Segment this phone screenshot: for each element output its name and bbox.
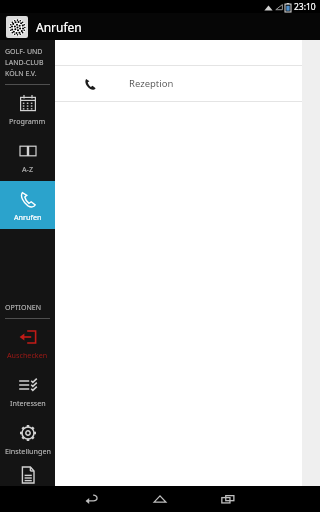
button[interactable]: A-Z: [0, 133, 55, 181]
button[interactable]: Open navigation drawer: [6, 16, 28, 38]
button[interactable]: Auschecken: [0, 319, 55, 367]
button[interactable]: Rezeption: [55, 66, 302, 101]
button[interactable]: Back: [70, 486, 114, 512]
button[interactable]: Programm: [0, 85, 55, 133]
staticText: KÖLN E.V.: [5, 69, 37, 79]
button[interactable]: Anrufen: [0, 181, 55, 229]
staticText: A-Z: [22, 164, 34, 174]
staticText: Einstellungen: [5, 446, 51, 456]
button[interactable]: Interessen: [0, 367, 55, 415]
button[interactable]: Home: [138, 486, 182, 512]
staticText: Anrufen: [14, 212, 42, 222]
staticText: 23:10: [294, 1, 316, 13]
staticText: Interessen: [10, 398, 46, 408]
button[interactable]: Dokumente: [0, 463, 55, 486]
staticText: Auschecken: [7, 350, 48, 360]
staticText: Programm: [9, 116, 46, 126]
button[interactable]: Recent apps: [206, 486, 250, 512]
staticText: OPTIONEN: [5, 303, 41, 313]
staticText: LAND-CLUB: [5, 58, 44, 68]
staticText: Rezeption: [129, 77, 174, 90]
staticText: GOLF- UND: [5, 47, 43, 57]
staticText: Anrufen: [36, 19, 82, 35]
button[interactable]: Einstellungen: [0, 415, 55, 463]
